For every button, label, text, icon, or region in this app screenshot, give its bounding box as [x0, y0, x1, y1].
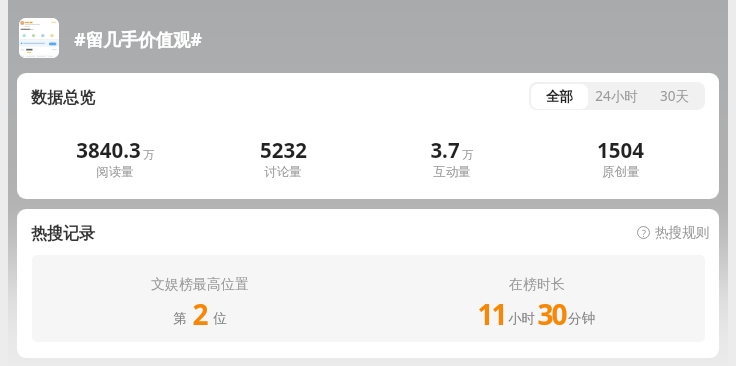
- staticText: #留几手价值观#: [74, 27, 202, 51]
- staticText: 1504: [597, 136, 644, 164]
- staticText: 原创量: [602, 164, 640, 180]
- staticText: 30: [537, 295, 566, 333]
- staticText: 分钟: [568, 310, 595, 327]
- staticText: 5232: [260, 136, 307, 164]
- staticText: ?: [642, 227, 646, 239]
- staticText: 位: [213, 310, 227, 327]
- staticText: 2: [192, 295, 207, 333]
- button[interactable]: 3.7: [367, 136, 536, 180]
- staticText: 3840.3: [76, 136, 141, 164]
- staticText: 11: [477, 295, 506, 333]
- staticText: 3.7: [430, 136, 460, 164]
- staticText: 万: [143, 148, 155, 162]
- staticText: 互动量: [433, 164, 471, 180]
- staticText: 30天: [660, 87, 689, 105]
- staticText: 讨论量: [264, 164, 302, 180]
- button[interactable]: 30天: [646, 82, 703, 110]
- staticText: 全部: [546, 88, 573, 105]
- staticText: 数据总览: [31, 88, 95, 108]
- staticText: 文娱榜最高位置: [151, 276, 249, 294]
- staticText: 热搜规则: [655, 224, 709, 241]
- button[interactable]: 全部: [531, 84, 588, 109]
- staticText: 万: [462, 148, 474, 162]
- button[interactable]: 1504: [536, 136, 705, 180]
- staticText: 小时: [508, 310, 535, 327]
- staticText: 24小时: [595, 87, 638, 105]
- staticText: 在榜时长: [509, 276, 565, 294]
- button[interactable]: 3840.3: [31, 136, 199, 180]
- staticText: 第: [173, 310, 187, 327]
- button[interactable]: 24小时: [588, 82, 645, 110]
- button[interactable]: 5232: [199, 136, 367, 180]
- staticText: 热搜记录: [31, 224, 95, 244]
- staticText: 阅读量: [96, 164, 134, 180]
- button[interactable]: ?: [637, 224, 709, 241]
